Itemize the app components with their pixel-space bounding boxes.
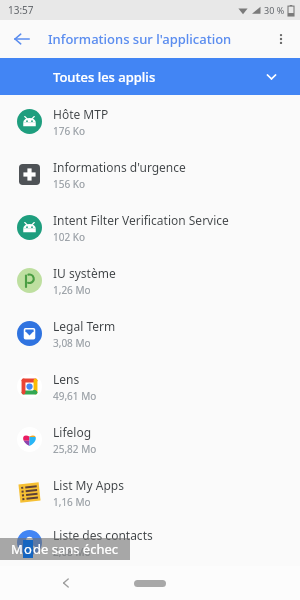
- staticText: Informations sur l'application: [48, 30, 232, 48]
- staticText: 176 Ko: [53, 124, 85, 138]
- staticText: 1,26 Mo: [53, 283, 91, 297]
- staticText: 156 Ko: [53, 177, 85, 191]
- staticText: de sans échec: [33, 540, 119, 558]
- button[interactable]: Hôte MTP: [0, 95, 300, 148]
- button[interactable]: Intent Filter Verification Service: [0, 201, 300, 254]
- button[interactable]: Plus d'options: [266, 24, 296, 54]
- staticText: List My Apps: [53, 477, 124, 493]
- button[interactable]: List My Apps: [0, 466, 300, 519]
- staticText: 2,08 Mo: [53, 545, 91, 559]
- button[interactable]: Lens: [0, 360, 300, 413]
- staticText: o: [24, 540, 32, 558]
- staticText: M: [11, 540, 23, 558]
- staticText: 102 Ko: [53, 230, 85, 244]
- staticText: 13:57: [8, 3, 34, 17]
- staticText: 49,61 Mo: [53, 389, 97, 403]
- button[interactable]: Retour: [52, 569, 80, 597]
- staticText: Informations d'urgence: [53, 159, 186, 175]
- button[interactable]: Retour: [6, 23, 38, 55]
- button[interactable]: Toutes les applis: [0, 58, 300, 95]
- staticText: Liste des contacts: [53, 527, 153, 543]
- staticText: IU système: [53, 265, 116, 281]
- staticText: Lens: [53, 371, 80, 387]
- staticText: Intent Filter Verification Service: [53, 212, 229, 228]
- button[interactable]: Lifelog: [0, 413, 300, 466]
- staticText: 25,82 Mo: [53, 442, 97, 456]
- button[interactable]: Liste des contacts: [0, 519, 300, 566]
- staticText: 1,16 Mo: [53, 495, 91, 509]
- staticText: 3,08 Mo: [53, 336, 91, 350]
- staticText: Lifelog: [53, 424, 92, 440]
- staticText: Legal Term: [53, 318, 116, 334]
- staticText: 30 %: [264, 4, 285, 16]
- button[interactable]: IU système: [0, 254, 300, 307]
- button[interactable]: Accueil: [130, 574, 170, 592]
- button[interactable]: Legal Term: [0, 307, 300, 360]
- staticText: Hôte MTP: [53, 106, 109, 122]
- staticText: Toutes les applis: [53, 68, 156, 86]
- button[interactable]: Informations d'urgence: [0, 148, 300, 201]
